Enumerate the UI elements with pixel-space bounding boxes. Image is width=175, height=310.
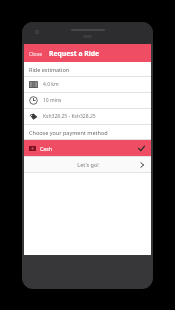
staticText: 10 mins	[43, 97, 62, 104]
staticText: Close	[29, 50, 43, 57]
button[interactable]: Let's go!	[24, 157, 151, 172]
staticText: Ksh328.25 - Ksh328.25	[43, 113, 96, 120]
staticText: Choose your payment method	[29, 129, 108, 136]
other: Continue	[139, 162, 145, 168]
button[interactable]: 10 mins	[24, 93, 151, 108]
staticText: Cash	[40, 145, 52, 152]
button[interactable]: Cash	[24, 140, 151, 156]
button[interactable]: Ksh328.25 - Ksh328.25	[24, 109, 151, 124]
staticText: Request a Ride	[49, 49, 100, 58]
staticText: Ride estimation	[29, 66, 70, 73]
staticText: Let's go!	[77, 161, 99, 168]
button[interactable]: 4.0 km	[24, 77, 151, 92]
button[interactable]: Close	[27, 47, 45, 60]
staticText: 4.0 km	[43, 81, 59, 88]
